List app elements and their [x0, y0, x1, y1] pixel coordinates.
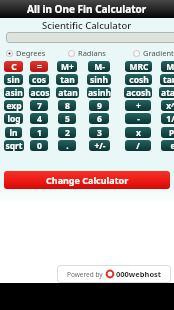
staticText: sqrt [5, 140, 23, 151]
button[interactable]: . [58, 140, 76, 151]
button[interactable]: +/- [89, 140, 110, 151]
button[interactable]: 4 [30, 113, 48, 124]
staticText: Powered by [67, 270, 103, 279]
button[interactable]: cos [29, 74, 49, 85]
staticText: Scientific Calculator [42, 19, 132, 32]
staticText: 2 [65, 127, 70, 138]
button[interactable]: - [125, 113, 151, 124]
button[interactable]: MRC [125, 61, 152, 72]
button[interactable]: x [125, 127, 151, 138]
staticText: Change Calculator [46, 174, 129, 186]
button[interactable]: atanh [159, 87, 174, 98]
staticText: Pi [169, 127, 174, 138]
button[interactable]: = [30, 61, 48, 72]
staticText: ln [9, 127, 18, 138]
button[interactable]: exp [4, 100, 23, 111]
staticText: log [7, 113, 21, 124]
staticText: e [170, 140, 174, 151]
staticText: + [136, 100, 141, 111]
button[interactable]: ln [5, 127, 22, 138]
staticText: acosh [126, 87, 151, 98]
staticText: 9 [97, 100, 102, 111]
button[interactable]: acos [29, 87, 50, 98]
button[interactable]: C [4, 61, 23, 72]
staticText: All in One Fin Calculator [27, 2, 147, 16]
staticText: 6 [97, 113, 102, 124]
staticText: 1/x [166, 113, 174, 124]
button[interactable]: x^y [161, 100, 174, 111]
staticText: x [136, 127, 141, 138]
staticText: 5 [65, 113, 70, 124]
button[interactable]: acosh [124, 87, 152, 98]
button[interactable]: Pi [161, 127, 174, 138]
staticText: 0 [37, 140, 42, 151]
staticText: = [37, 61, 42, 72]
button[interactable]: 6 [89, 113, 109, 124]
button[interactable] [6, 32, 174, 43]
button[interactable]: asinh [87, 87, 111, 98]
button[interactable]: sin [4, 74, 23, 85]
staticText: exp [6, 100, 22, 111]
button[interactable]: tan [56, 74, 78, 85]
button[interactable]: 8 [58, 100, 76, 111]
button[interactable]: + [125, 100, 151, 111]
staticText: . [66, 140, 69, 151]
staticText: 8 [65, 100, 70, 111]
staticText: tanh [163, 74, 174, 85]
button[interactable]: 0 [30, 140, 48, 151]
staticText: 3 [97, 127, 102, 138]
staticText: C [11, 61, 17, 72]
button[interactable]: 9 [89, 100, 109, 111]
button[interactable]: asin [4, 87, 24, 98]
staticText: 1 [37, 127, 42, 138]
button[interactable]: Radians [68, 48, 106, 58]
button[interactable]: / [125, 140, 151, 151]
button[interactable]: Change Calculator [4, 171, 170, 189]
staticText: M+ [61, 61, 74, 72]
button[interactable]: MC [161, 61, 174, 72]
button[interactable]: sqrt [4, 140, 24, 151]
button[interactable]: 7 [30, 100, 48, 111]
staticText: cos [32, 74, 46, 85]
button[interactable]: tanh [160, 74, 174, 85]
staticText: 7 [37, 100, 42, 111]
staticText: Gradients [143, 48, 174, 58]
button[interactable]: 5 [58, 113, 76, 124]
staticText: acos [30, 87, 50, 98]
button[interactable]: sinh [87, 74, 111, 85]
staticText: Radians [78, 48, 106, 58]
staticText: cosh [129, 74, 149, 85]
button[interactable]: 1/x [161, 113, 174, 124]
staticText: MRC [129, 61, 149, 72]
button[interactable]: 1 [30, 127, 48, 138]
staticText: atan [58, 87, 78, 98]
staticText: Degrees [16, 48, 46, 58]
staticText: 4 [37, 113, 42, 124]
button[interactable]: e [161, 140, 174, 151]
button[interactable]: 3 [89, 127, 109, 138]
button[interactable]: Powered by [57, 265, 171, 283]
staticText: x^y [166, 100, 174, 111]
staticText: asinh [88, 87, 111, 98]
staticText: asin [5, 87, 23, 98]
staticText: - [137, 113, 140, 124]
staticText: tan [60, 74, 75, 85]
staticText: MC [166, 61, 174, 72]
staticText: +/- [94, 140, 106, 151]
staticText: sin [7, 74, 20, 85]
staticText: atanh [161, 87, 174, 98]
button[interactable]: 2 [58, 127, 76, 138]
button[interactable]: Gradients [133, 48, 174, 58]
staticText: M- [94, 61, 105, 72]
button[interactable]: log [4, 113, 23, 124]
button[interactable]: atan [56, 87, 79, 98]
button[interactable]: M- [88, 61, 110, 72]
button[interactable]: M+ [57, 61, 77, 72]
button[interactable]: cosh [125, 74, 152, 85]
button[interactable]: Degrees [6, 48, 46, 58]
staticText: / [136, 140, 140, 151]
staticText: 000webhost [116, 269, 162, 279]
staticText: sinh [90, 74, 108, 85]
